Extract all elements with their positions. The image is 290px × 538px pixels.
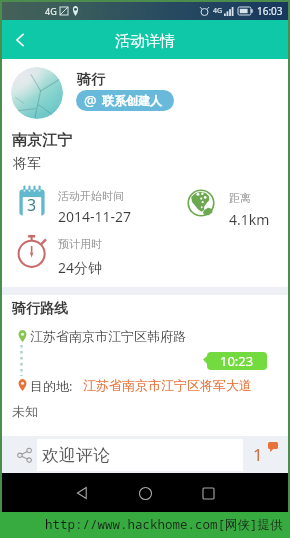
button[interactable]: Back xyxy=(64,475,100,511)
staticText: 2014-11-27 xyxy=(58,207,132,226)
staticText: 10:23 xyxy=(220,352,254,370)
staticText: 16:03 xyxy=(257,4,283,18)
staticText: 江苏省南京市江宁区将军大道 xyxy=(83,377,252,393)
staticText: 活动开始时间 xyxy=(58,189,124,203)
staticText: 4G xyxy=(45,5,57,17)
button[interactable]: Share xyxy=(12,436,38,473)
staticText: 欢迎评论 xyxy=(42,445,110,466)
staticText: 骑行路线 xyxy=(12,300,68,318)
staticText: 目的地: xyxy=(30,377,73,395)
staticText: 将军 xyxy=(13,155,41,173)
staticText: http://www.hackhome.com[网侠]提供 xyxy=(45,516,283,533)
staticText: 4G xyxy=(213,6,223,16)
staticText: @ xyxy=(84,91,97,110)
button[interactable]: Recents xyxy=(190,475,226,511)
staticText: 距离 xyxy=(229,191,251,205)
staticText: 联系创建人 xyxy=(102,93,162,108)
button[interactable]: 欢迎评论 xyxy=(37,439,243,471)
staticText: 24分钟 xyxy=(58,258,103,277)
staticText: 南京江宁 xyxy=(12,131,72,150)
button[interactable]: Home xyxy=(127,475,163,511)
staticText: 预计用时 xyxy=(58,237,102,251)
button[interactable]: Back xyxy=(2,22,38,58)
staticText: 骑行 xyxy=(77,71,105,89)
staticText: 活动详情 xyxy=(115,32,175,51)
staticText: 江苏省南京市江宁区韩府路 xyxy=(30,328,186,344)
button[interactable]: @ xyxy=(76,90,174,111)
staticText: 未知 xyxy=(12,403,38,419)
staticText: 1 xyxy=(253,443,263,466)
staticText: 4.1km xyxy=(229,210,270,229)
button[interactable]: 1 xyxy=(243,436,288,473)
staticText: 3 xyxy=(27,194,37,216)
